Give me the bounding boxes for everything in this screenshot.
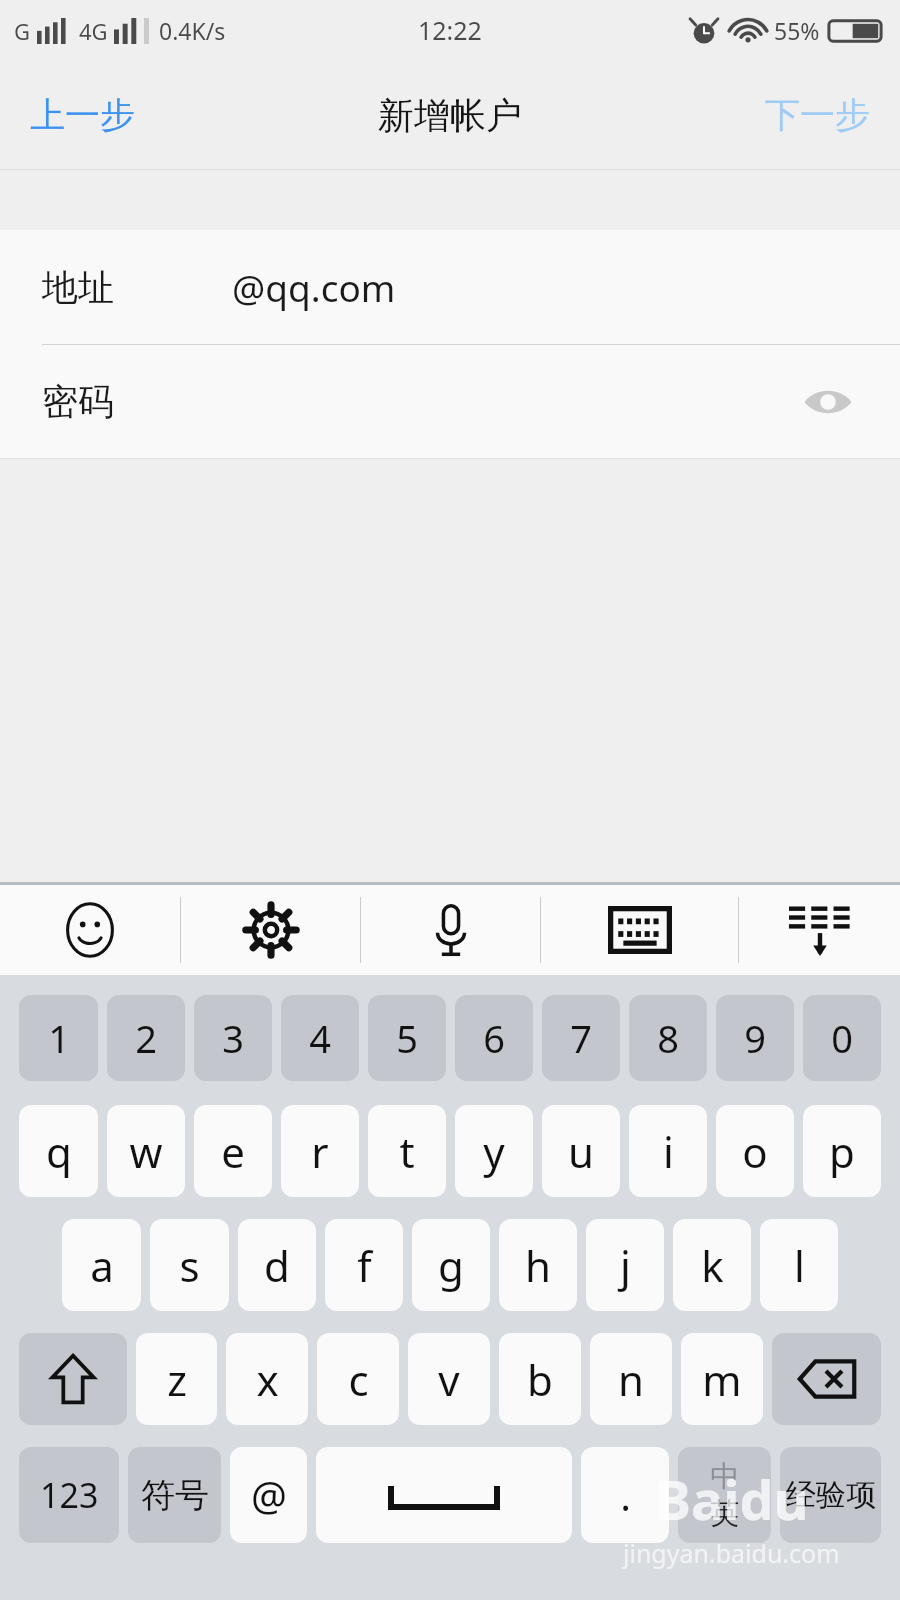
staticText: 地址	[42, 265, 232, 310]
staticText: 上一步	[30, 93, 135, 137]
button[interactable]: d	[238, 1219, 316, 1311]
button[interactable]: m	[681, 1333, 763, 1425]
button[interactable]: Shift	[19, 1333, 127, 1425]
staticText: o	[742, 1123, 768, 1180]
button[interactable]: x	[226, 1333, 308, 1425]
staticText: u	[568, 1123, 594, 1180]
button[interactable]: a	[62, 1219, 141, 1311]
button[interactable]: f	[325, 1219, 403, 1311]
staticText: jingyan.baidu.com	[623, 1536, 840, 1570]
button[interactable]: 5	[368, 995, 446, 1081]
button[interactable]: o	[716, 1105, 794, 1197]
staticText: @	[251, 1468, 287, 1522]
staticText: m	[702, 1351, 742, 1408]
button[interactable]: 7	[542, 995, 620, 1081]
button[interactable]: 8	[629, 995, 707, 1081]
staticText: p	[829, 1123, 855, 1180]
staticText: z	[167, 1351, 187, 1408]
staticText: 5	[396, 1012, 418, 1064]
staticText: 中	[710, 1458, 739, 1495]
button[interactable]: l	[760, 1219, 838, 1311]
button[interactable]: t	[368, 1105, 446, 1197]
button[interactable]: 4	[281, 995, 359, 1081]
button[interactable]: 2	[107, 995, 185, 1081]
button[interactable]: j	[586, 1219, 664, 1311]
button[interactable]: z	[136, 1333, 217, 1425]
staticText: x	[256, 1351, 279, 1408]
staticText: s	[179, 1237, 200, 1294]
staticText: i	[663, 1123, 674, 1180]
button[interactable]: .	[581, 1447, 669, 1543]
staticText: h	[525, 1237, 551, 1294]
button[interactable]: Show password	[798, 382, 858, 422]
staticText: l	[794, 1237, 805, 1294]
staticText: @qq.com	[232, 262, 396, 312]
staticText: y	[483, 1123, 505, 1180]
button[interactable]: p	[803, 1105, 881, 1197]
button[interactable]: r	[281, 1105, 359, 1197]
button[interactable]: c	[317, 1333, 399, 1425]
staticText: G	[14, 16, 31, 46]
button[interactable]: e	[194, 1105, 272, 1197]
button[interactable]: Space	[316, 1447, 572, 1543]
button[interactable]: v	[408, 1333, 490, 1425]
staticText: 密码	[42, 379, 798, 424]
button[interactable]: 符号	[128, 1447, 221, 1543]
button[interactable]: b	[499, 1333, 581, 1425]
staticText: w	[129, 1123, 163, 1180]
button[interactable]: 0	[803, 995, 881, 1081]
button[interactable]: h	[499, 1219, 577, 1311]
staticText: 8	[657, 1012, 679, 1064]
button[interactable]: 地址	[0, 230, 900, 344]
button[interactable]: 123	[19, 1447, 119, 1543]
button[interactable]: 3	[194, 995, 272, 1081]
button[interactable]: 下一步	[735, 60, 900, 170]
button[interactable]: s	[150, 1219, 229, 1311]
staticText: 2	[135, 1012, 157, 1064]
button[interactable]: Switch keyboard layout	[541, 885, 738, 975]
button[interactable]: Keyboard settings	[181, 885, 360, 975]
button[interactable]: q	[19, 1105, 98, 1197]
button[interactable]: i	[629, 1105, 707, 1197]
staticText: 4G	[79, 16, 108, 46]
button[interactable]: k	[673, 1219, 751, 1311]
button[interactable]: Emoji	[0, 885, 180, 975]
button[interactable]: 6	[455, 995, 533, 1081]
button[interactable]: Backspace	[772, 1333, 881, 1425]
staticText: 0.4K/s	[159, 15, 226, 46]
button[interactable]: Hide keyboard	[739, 885, 900, 975]
staticText: 英	[710, 1495, 739, 1532]
button[interactable]: w	[107, 1105, 185, 1197]
staticText: .	[620, 1468, 631, 1522]
button[interactable]: u	[542, 1105, 620, 1197]
button[interactable]: 密码	[0, 345, 900, 458]
staticText: 经验项	[786, 1476, 876, 1514]
staticText: g	[438, 1237, 464, 1294]
staticText: j	[620, 1237, 631, 1294]
button[interactable]: y	[455, 1105, 533, 1197]
button[interactable]: Voice input	[361, 885, 540, 975]
button[interactable]: 上一步	[0, 60, 165, 170]
staticText: 9	[744, 1012, 766, 1064]
staticText: r	[311, 1123, 329, 1180]
staticText: q	[46, 1123, 72, 1180]
staticText: a	[90, 1237, 114, 1294]
button[interactable]: @	[230, 1447, 307, 1543]
staticText: d	[264, 1237, 290, 1294]
button[interactable]: g	[412, 1219, 490, 1311]
staticText: 符号	[141, 1474, 209, 1517]
staticText: f	[357, 1237, 372, 1294]
staticText: b	[527, 1351, 553, 1408]
button[interactable]: Switch Chinese English	[678, 1447, 771, 1543]
button[interactable]: 经验项	[780, 1447, 881, 1543]
button[interactable]: 1	[19, 995, 98, 1081]
button[interactable]: 9	[716, 995, 794, 1081]
staticText: 55%	[774, 15, 820, 46]
staticText: n	[618, 1351, 644, 1408]
button[interactable]: n	[590, 1333, 672, 1425]
staticText: Baidu	[655, 1462, 809, 1536]
staticText: 7	[570, 1012, 592, 1064]
staticText: 下一步	[765, 93, 870, 137]
staticText: 4	[309, 1012, 331, 1064]
staticText: k	[701, 1237, 724, 1294]
